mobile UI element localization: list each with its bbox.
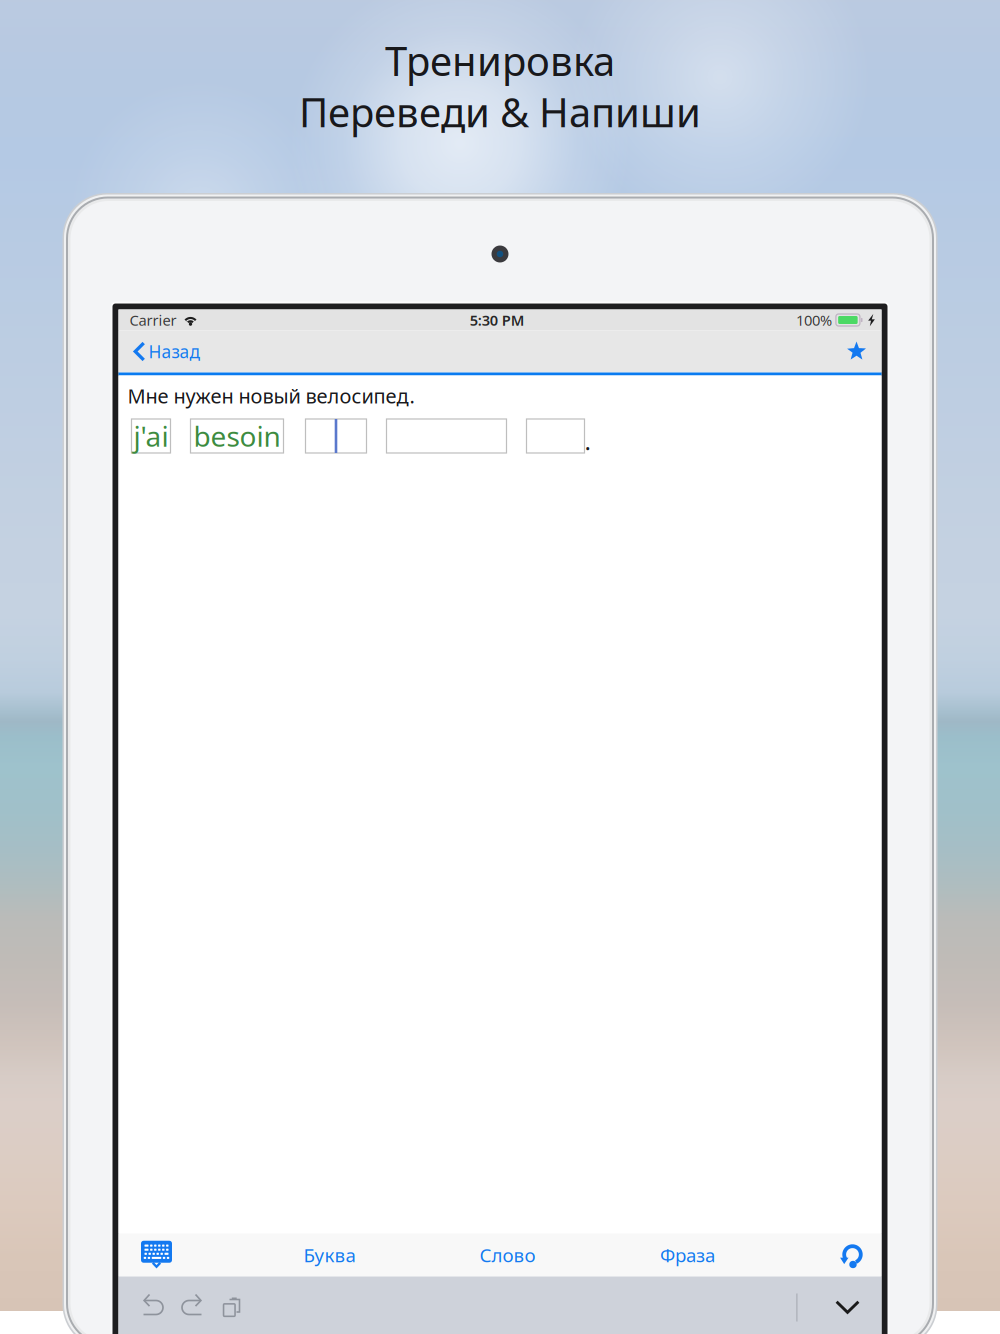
staticText: 100% xyxy=(796,310,832,330)
button[interactable]: Blank xyxy=(526,419,584,453)
button[interactable]: Слово xyxy=(451,1233,563,1276)
staticText: Буква xyxy=(303,1243,355,1267)
staticText: Фраза xyxy=(660,1243,715,1267)
staticText: . xyxy=(584,425,590,457)
staticText: j'ai xyxy=(133,417,168,455)
staticText: Переведи & Напиши xyxy=(299,85,701,138)
button[interactable]: Hide keyboard xyxy=(827,1279,867,1334)
staticText: Слово xyxy=(479,1243,535,1267)
staticText: besoin xyxy=(193,417,280,455)
staticText: Тренировка xyxy=(385,34,615,87)
button[interactable]: Paste xyxy=(212,1279,252,1334)
button[interactable]: besoin xyxy=(190,419,283,453)
button[interactable]: Keyboard xyxy=(127,1233,185,1276)
button[interactable]: j'ai xyxy=(131,419,170,453)
staticText: Мне нужен новый велосипед. xyxy=(127,382,414,409)
button[interactable]: Blank xyxy=(386,419,506,453)
staticText: Carrier xyxy=(129,310,176,330)
button[interactable]: Undo xyxy=(132,1279,172,1334)
button[interactable]: Фраза xyxy=(631,1233,743,1276)
staticText: 5:30 PM xyxy=(470,310,525,330)
button[interactable]: Redo xyxy=(172,1279,212,1334)
button[interactable]: Favorite xyxy=(838,330,874,372)
button[interactable]: Text field xyxy=(305,419,366,453)
button[interactable]: Reload xyxy=(832,1233,872,1276)
staticText: Назад xyxy=(148,340,200,363)
button[interactable]: Буква xyxy=(273,1233,385,1276)
button[interactable]: Назад xyxy=(125,330,206,372)
